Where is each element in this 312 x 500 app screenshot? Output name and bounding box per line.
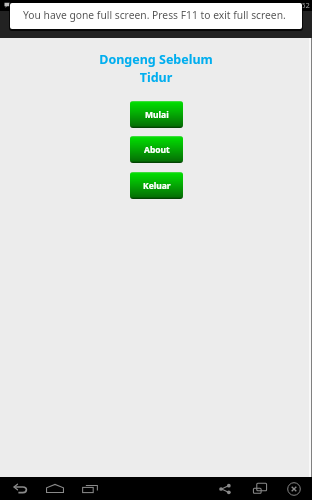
button[interactable]: Back <box>3 477 37 500</box>
button[interactable]: Keluar <box>130 172 183 199</box>
button[interactable]: Recent apps <box>73 477 107 500</box>
staticText: Mulai <box>145 109 169 121</box>
staticText: Dongeng Sebelum Tidur <box>0 51 312 86</box>
button[interactable]: Home <box>38 477 72 500</box>
button[interactable]: Share <box>208 477 242 500</box>
button[interactable]: Close <box>277 477 311 500</box>
button[interactable]: Cast screen <box>243 477 277 500</box>
button[interactable]: Mulai <box>130 101 183 128</box>
staticText: 3:52 <box>295 0 310 10</box>
staticText: You have gone full screen. Press F11 to … <box>23 8 286 22</box>
staticText: Keluar <box>143 180 171 192</box>
button[interactable]: About <box>130 136 183 163</box>
staticText: About <box>144 144 170 156</box>
